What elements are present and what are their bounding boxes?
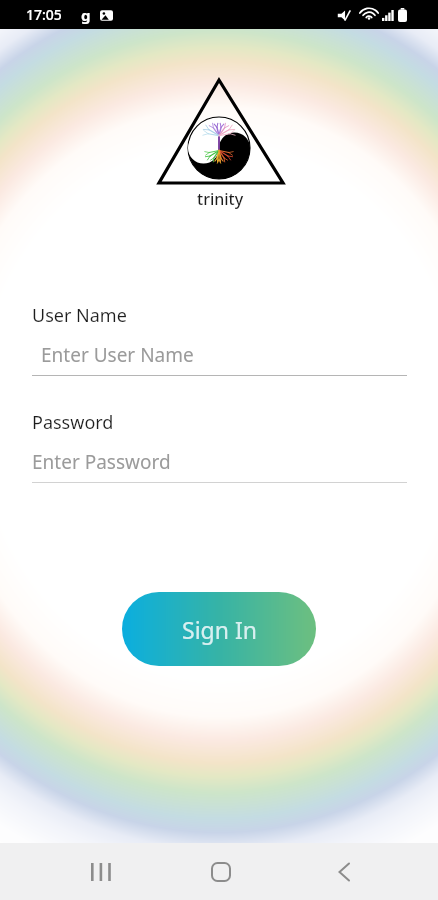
button[interactable]: Back — [314, 843, 374, 900]
button[interactable]: Recent apps — [70, 843, 130, 900]
staticText: Password — [32, 410, 114, 435]
staticText: g — [81, 5, 91, 25]
staticText: 17:05 — [26, 5, 62, 24]
staticText: User Name — [32, 303, 127, 328]
button[interactable]: Home — [191, 843, 251, 900]
button[interactable]: Sign In — [122, 592, 316, 666]
staticText: trinity — [197, 188, 244, 210]
staticText: Sign In — [182, 614, 257, 645]
staticText: Enter User Name — [41, 342, 194, 368]
staticText: Enter Password — [32, 449, 171, 475]
